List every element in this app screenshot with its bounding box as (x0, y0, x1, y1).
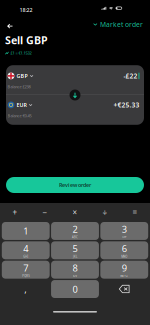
button[interactable]: Review order (6, 177, 144, 193)
button[interactable]: − (30, 203, 60, 222)
staticText: 3 (122, 223, 127, 235)
button[interactable]: 5 (51, 241, 99, 259)
button[interactable]: 2 (51, 222, 99, 240)
staticText: GBP (17, 72, 28, 79)
button[interactable]: 4 (2, 241, 50, 259)
staticText: 0 (72, 283, 77, 295)
button[interactable]: = (120, 203, 150, 222)
button[interactable]: Delete (100, 280, 148, 298)
staticText: MNO (121, 255, 127, 258)
button[interactable]: 3 (100, 222, 148, 240)
staticText: + (12, 207, 17, 218)
staticText: 2 (72, 223, 77, 235)
staticText: 1 (23, 225, 28, 237)
staticText: = (132, 207, 137, 218)
staticText: 7 (23, 262, 28, 274)
staticText: PQRS (22, 274, 29, 278)
staticText: JKL (73, 255, 77, 258)
button[interactable]: ÷ (90, 203, 120, 222)
staticText: Review order (59, 181, 91, 189)
button[interactable]: + (0, 203, 30, 222)
staticText: ÷ (102, 207, 107, 218)
button[interactable]: Back (4, 20, 17, 33)
staticText: Sell GBP (5, 33, 48, 47)
staticText: 5 (72, 242, 77, 255)
staticText: EUR (17, 101, 27, 108)
staticText: 6 (122, 242, 127, 255)
staticText: GHI (23, 255, 28, 258)
staticText: TUV (72, 274, 77, 278)
button[interactable]: GBP (6, 65, 144, 94)
button[interactable]: 8 (51, 261, 99, 279)
button[interactable]: EUR (6, 95, 144, 125)
button[interactable]: , (2, 280, 50, 298)
button[interactable]: Swap currencies (69, 89, 81, 101)
staticText: , (24, 283, 27, 295)
staticText: 9 (122, 262, 127, 274)
staticText: +€25.33 (113, 100, 139, 109)
staticText: £1 = €1.1532 (10, 50, 31, 56)
staticText: 8 (72, 262, 77, 274)
staticText: WXYZ (120, 274, 128, 278)
staticText: Balance €0.45 (8, 113, 32, 118)
button[interactable]: 0 (51, 280, 99, 298)
staticText: Market order (100, 20, 143, 29)
staticText: − (42, 207, 47, 218)
button[interactable]: 7 (2, 261, 50, 279)
button[interactable]: Market order (93, 18, 143, 30)
button[interactable]: × (60, 203, 90, 222)
staticText: 4 (23, 242, 28, 255)
button[interactable]: 1 (2, 222, 50, 240)
staticText: -£22 (123, 71, 137, 80)
button[interactable]: 9 (100, 261, 148, 279)
staticText: Balance £238 (8, 84, 31, 89)
staticText: 18:22 (20, 6, 33, 14)
staticText: ABC (72, 235, 78, 239)
staticText: DEF (122, 235, 126, 239)
button[interactable]: 6 (100, 241, 148, 259)
staticText: × (72, 207, 77, 218)
